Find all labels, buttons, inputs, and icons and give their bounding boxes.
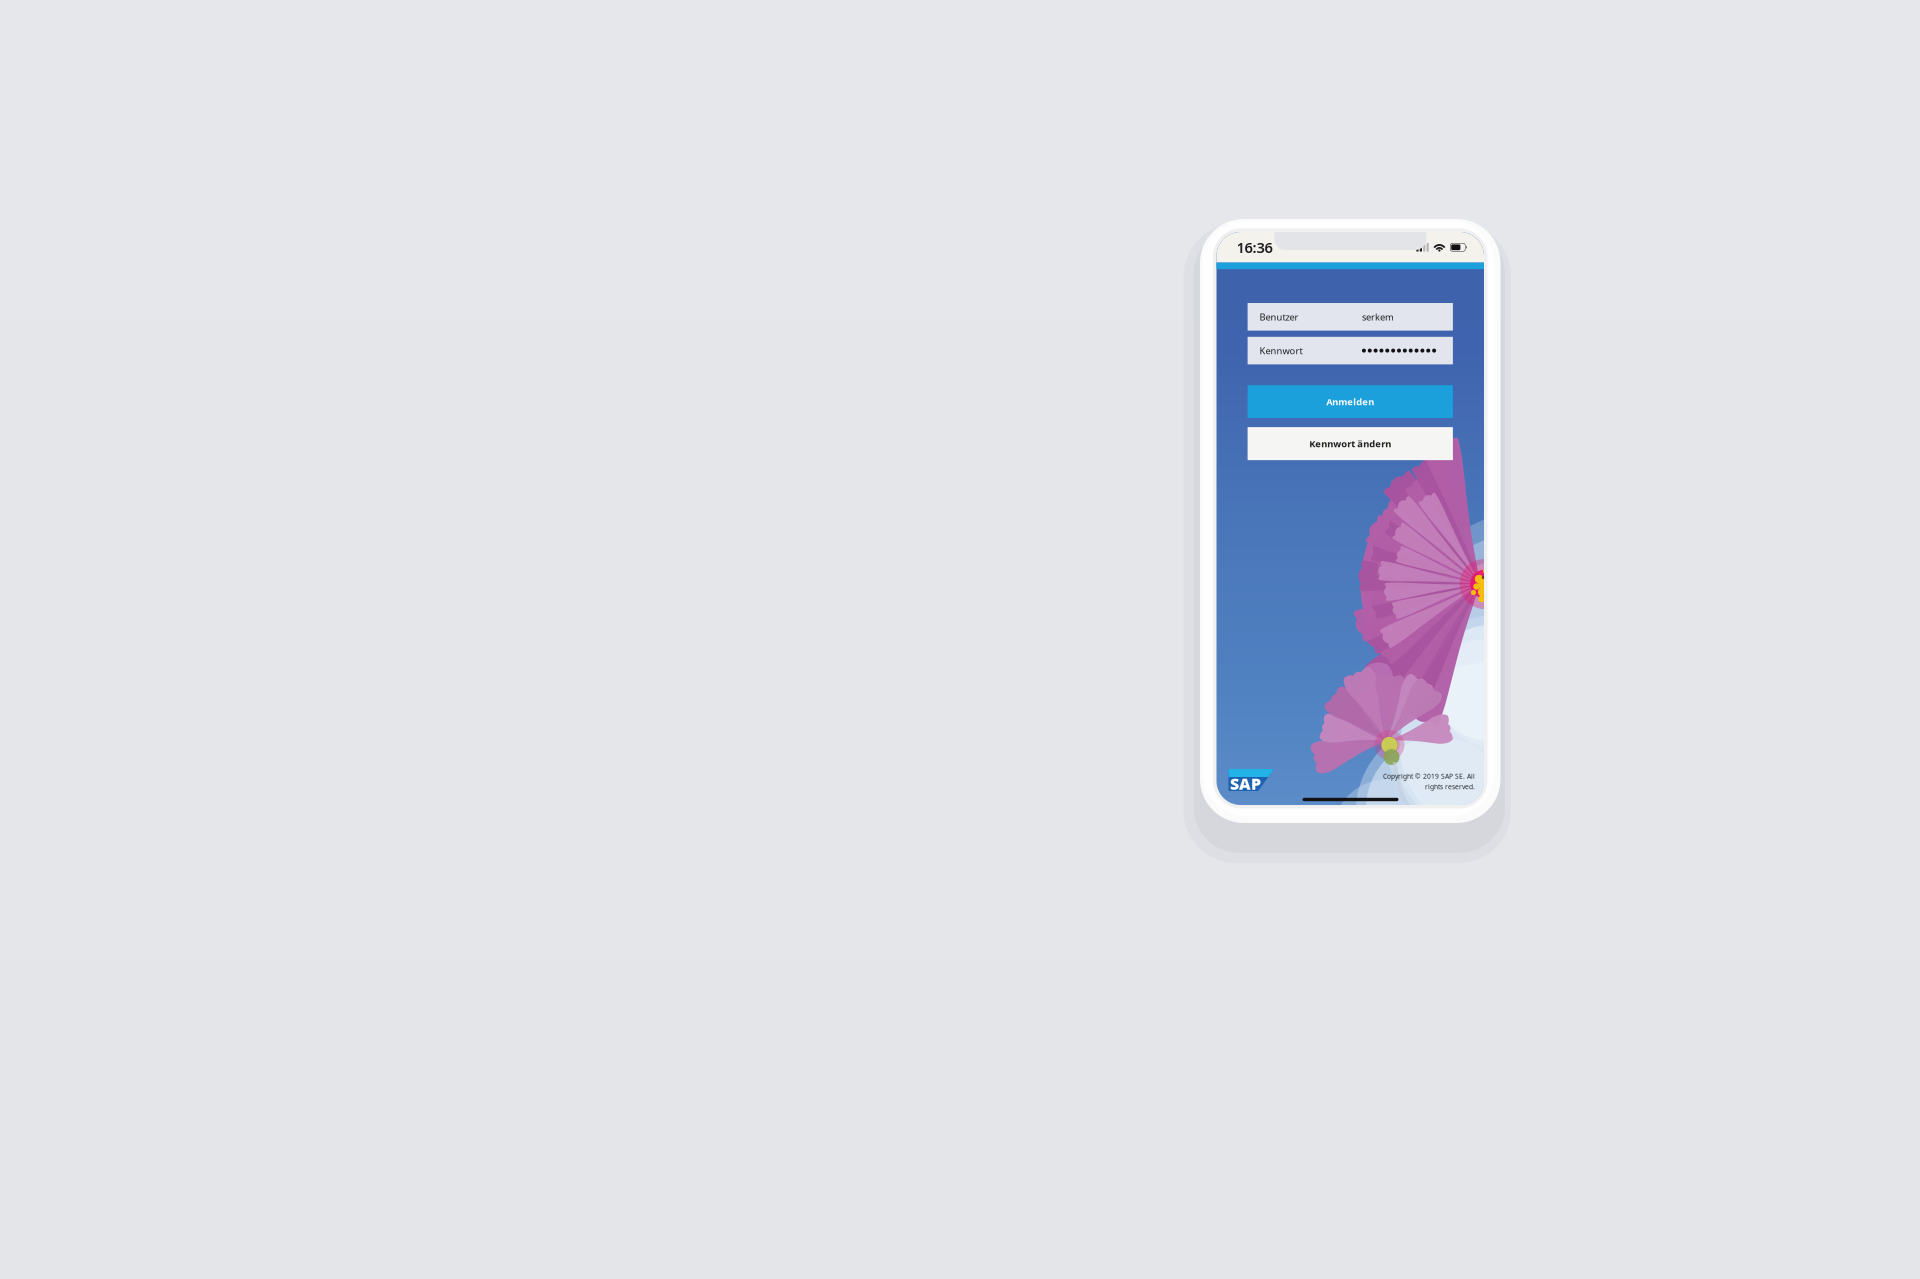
staticText: SAP [1230,773,1261,794]
staticText: Kennwort [1260,344,1303,357]
staticText: Anmelden [1326,395,1374,408]
staticText: Copyright © 2019 SAP SE. All [1383,772,1475,781]
button[interactable]: Anmelden [1248,385,1453,418]
button[interactable]: Kennwort [1248,337,1453,364]
staticText: serkem [1362,311,1394,323]
button[interactable]: Benutzer [1248,303,1453,331]
button[interactable]: Kennwort ändern [1248,427,1453,460]
staticText: 16:36 [1236,238,1272,257]
staticText: rights reserved. [1425,782,1475,791]
staticText: Kennwort ändern [1309,437,1391,450]
staticText: Benutzer [1260,311,1299,323]
